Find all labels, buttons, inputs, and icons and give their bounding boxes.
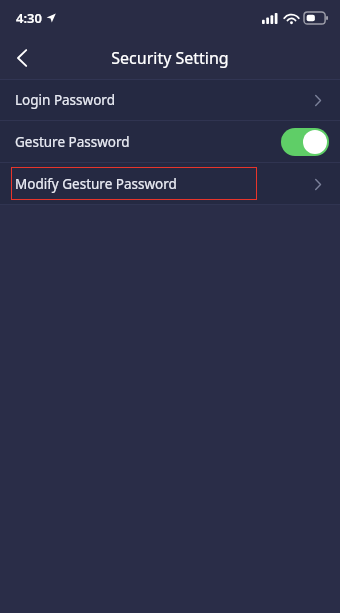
button[interactable]: Login Password	[0, 80, 340, 120]
staticText: Gesture Password	[15, 133, 130, 151]
button[interactable]: Gesture Password toggle, on	[281, 128, 329, 156]
button[interactable]: Back	[0, 36, 44, 80]
staticText: Login Password	[15, 91, 115, 109]
other: Open Modify Gesture Password	[308, 174, 328, 194]
staticText: 4:30	[16, 9, 42, 27]
button[interactable]: Modify Gesture Password	[11, 167, 257, 200]
staticText: Modify Gesture Password	[15, 175, 177, 193]
button[interactable]: Gesture Password	[0, 121, 340, 162]
staticText: Security Setting	[111, 47, 229, 69]
